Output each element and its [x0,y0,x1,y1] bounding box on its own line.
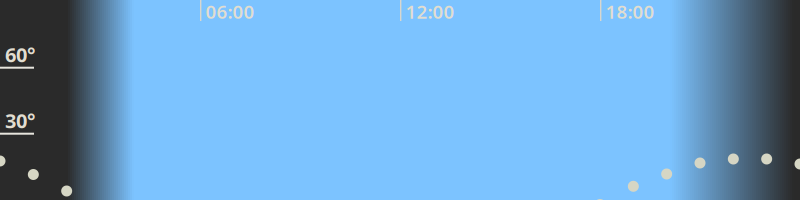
staticText: 06:00 [205,0,254,24]
staticText: 30° [5,107,35,134]
staticText: 60° [5,41,35,68]
staticText: 18:00 [605,0,654,24]
staticText: 12:00 [405,0,454,24]
